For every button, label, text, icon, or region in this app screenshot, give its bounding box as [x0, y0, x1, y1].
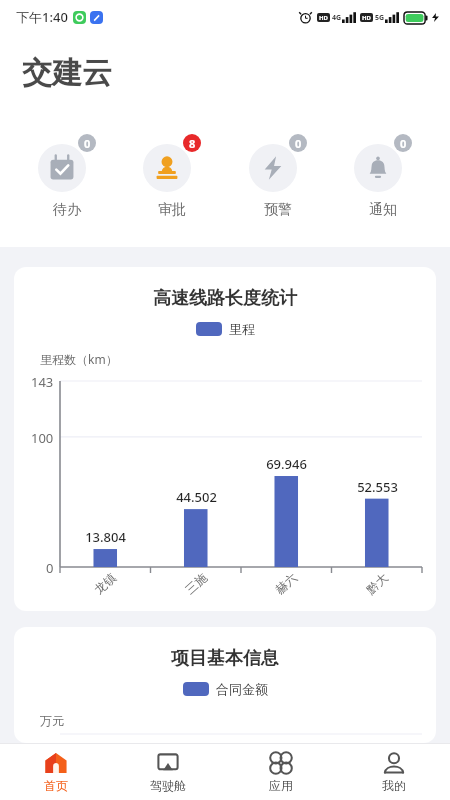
- staticText: HD: [319, 14, 328, 22]
- staticText: 4G: [332, 13, 342, 23]
- staticText: 驾驶舱: [150, 778, 186, 793]
- staticText: 143: [31, 373, 54, 391]
- staticText: 下午1:40: [16, 8, 68, 26]
- staticText: 100: [31, 429, 54, 447]
- staticText: HD: [362, 14, 371, 22]
- staticText: 0: [84, 136, 91, 151]
- staticText: 龙镇: [91, 570, 119, 597]
- staticText: 里程数（km）: [40, 351, 118, 367]
- staticText: 0: [46, 559, 54, 577]
- button[interactable]: 项目基本信息: [14, 627, 436, 743]
- staticText: 8: [189, 136, 196, 151]
- button[interactable]: 首页: [0, 744, 112, 800]
- button[interactable]: 高速线路长度统计: [14, 267, 436, 611]
- staticText: 69.946: [266, 455, 307, 473]
- staticText: 黔大: [363, 570, 391, 597]
- staticText: 三施: [182, 570, 210, 597]
- staticText: 高速线路长度统计: [153, 287, 297, 310]
- staticText: 待办: [53, 201, 81, 219]
- staticText: 应用: [269, 778, 293, 793]
- button[interactable]: 审批: [133, 134, 211, 219]
- staticText: 合同金额: [216, 681, 268, 697]
- staticText: 44.502: [176, 488, 217, 506]
- button[interactable]: 通知: [344, 134, 422, 219]
- button[interactable]: 应用: [224, 744, 337, 800]
- staticText: 项目基本信息: [171, 647, 279, 670]
- button[interactable]: 我的: [337, 744, 450, 800]
- staticText: 我的: [382, 778, 406, 793]
- staticText: 交建云: [22, 54, 112, 92]
- staticText: 万元: [40, 713, 64, 728]
- staticText: 赫六: [272, 570, 300, 597]
- staticText: 里程: [229, 321, 255, 337]
- staticText: 0: [295, 136, 302, 151]
- staticText: 首页: [44, 778, 68, 793]
- button[interactable]: 驾驶舱: [112, 744, 224, 800]
- staticText: 5G: [375, 13, 385, 23]
- staticText: 预警: [264, 201, 292, 219]
- button[interactable]: 预警: [239, 134, 317, 219]
- staticText: 13.804: [85, 528, 126, 546]
- staticText: 审批: [158, 201, 186, 219]
- staticText: 0: [400, 136, 407, 151]
- button[interactable]: 待办: [28, 134, 106, 219]
- staticText: 52.553: [357, 478, 398, 496]
- staticText: 通知: [369, 201, 397, 219]
